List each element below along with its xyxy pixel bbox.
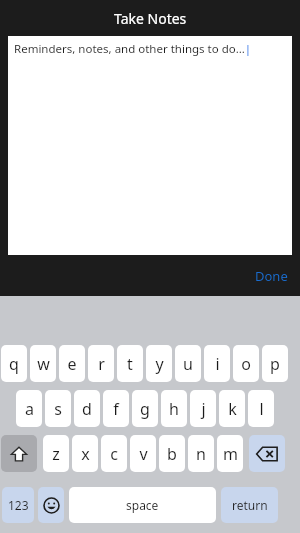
button[interactable]: x (72, 435, 98, 472)
staticText: d (82, 398, 92, 420)
staticText: n (196, 443, 206, 465)
button[interactable]: n (188, 435, 214, 472)
staticText: t (127, 353, 133, 375)
button[interactable]: p (262, 345, 288, 382)
staticText: v (139, 443, 148, 465)
button[interactable]: space (69, 487, 216, 523)
button[interactable]: a (16, 390, 42, 427)
button[interactable]: b (159, 435, 185, 472)
button[interactable]: return (221, 487, 278, 523)
button[interactable]: Reminders, notes, and other things to do… (8, 36, 292, 255)
staticText: a (25, 398, 34, 420)
button[interactable]: z (43, 435, 69, 472)
button[interactable]: Done (243, 261, 300, 291)
button[interactable]: v (130, 435, 156, 472)
staticText: f (113, 398, 119, 420)
staticText: w (37, 353, 50, 375)
button[interactable]: 123 (2, 487, 34, 523)
staticText: g (140, 398, 150, 420)
button[interactable]: l (248, 390, 274, 427)
staticText: p (270, 353, 280, 375)
staticText: r (98, 353, 105, 375)
button[interactable]: i (204, 345, 230, 382)
staticText: o (241, 353, 251, 375)
staticText: s (54, 398, 62, 420)
button[interactable]: r (88, 345, 114, 382)
staticText: e (67, 353, 77, 375)
staticText: y (155, 353, 164, 375)
button[interactable]: q (1, 345, 27, 382)
button[interactable]: c (101, 435, 127, 472)
staticText: q (9, 353, 19, 375)
staticText: return (232, 497, 268, 513)
staticText: j (201, 398, 206, 420)
button[interactable]: e (59, 345, 85, 382)
button[interactable]: Shift (1, 435, 37, 472)
staticText: m (223, 443, 238, 465)
button[interactable]: u (175, 345, 201, 382)
button[interactable]: j (190, 390, 216, 427)
button[interactable]: s (45, 390, 71, 427)
staticText: u (183, 353, 193, 375)
button[interactable]: m (217, 435, 243, 472)
button[interactable]: y (146, 345, 172, 382)
button[interactable]: k (219, 390, 245, 427)
staticText: space (126, 497, 159, 513)
staticText: z (52, 443, 60, 465)
button[interactable]: t (117, 345, 143, 382)
staticText: c (110, 443, 118, 465)
staticText: k (228, 398, 237, 420)
staticText: b (167, 443, 177, 465)
button[interactable]: g (132, 390, 158, 427)
button[interactable]: w (30, 345, 56, 382)
staticText: h (169, 398, 179, 420)
staticText: i (215, 353, 220, 375)
staticText: l (259, 398, 264, 420)
staticText: x (81, 443, 90, 465)
staticText: 123 (8, 497, 29, 513)
button[interactable]: Emoji (38, 487, 64, 523)
button[interactable]: o (233, 345, 259, 382)
staticText: Reminders, notes, and other things to do… (14, 41, 252, 57)
button[interactable]: Backspace (249, 435, 285, 472)
button[interactable]: f (103, 390, 129, 427)
staticText: Done (255, 267, 288, 285)
staticText: Take Notes (114, 9, 187, 28)
button[interactable]: d (74, 390, 100, 427)
button[interactable]: h (161, 390, 187, 427)
